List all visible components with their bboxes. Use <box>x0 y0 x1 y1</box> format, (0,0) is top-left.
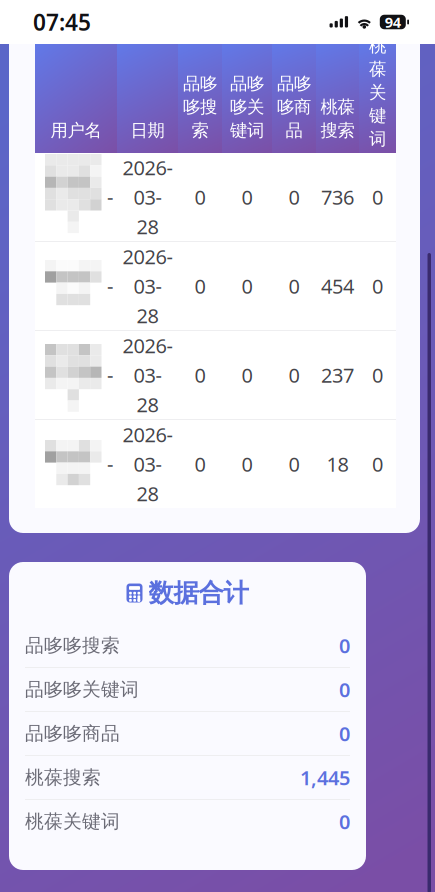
button[interactable]: 品哆哆商品 <box>9 712 366 756</box>
staticText: 03- <box>133 451 161 477</box>
staticText: 0 <box>241 362 252 388</box>
staticText: 0 <box>194 273 205 299</box>
staticText: 454 <box>321 273 354 299</box>
staticText: - <box>107 184 113 210</box>
staticText: 0 <box>241 184 252 210</box>
button[interactable]: 品哆哆搜索 <box>9 624 366 668</box>
staticText: 0 <box>241 451 252 477</box>
staticText: 07:45 <box>33 7 91 37</box>
staticText: 哆关 <box>230 96 264 118</box>
staticText: 736 <box>321 184 354 210</box>
button[interactable]: 品哆哆关键词 <box>9 668 366 712</box>
staticText: 品哆 <box>277 73 311 94</box>
staticText: 哆搜 <box>183 96 217 118</box>
staticText: 搜索 <box>320 120 354 141</box>
staticText: 0 <box>194 362 205 388</box>
staticText: 桃 <box>369 35 386 57</box>
staticText: 18 <box>326 451 348 477</box>
staticText: 日期 <box>130 120 164 141</box>
staticText: 索 <box>191 120 208 141</box>
staticText: 2026- <box>122 421 172 448</box>
staticText: 品哆 <box>183 73 217 94</box>
staticText: 94 <box>385 12 401 32</box>
staticText: - <box>107 273 113 299</box>
staticText: 0 <box>339 632 350 659</box>
staticText: 03- <box>133 184 161 210</box>
staticText: 0 <box>288 362 299 388</box>
staticText: 桃葆 <box>320 96 354 118</box>
staticText: 0 <box>194 184 205 210</box>
staticText: 桃葆关键词 <box>25 810 120 833</box>
staticText: 桃葆搜索 <box>25 766 101 789</box>
staticText: 0 <box>372 273 383 299</box>
staticText: 0 <box>194 451 205 477</box>
staticText: 0 <box>288 184 299 210</box>
button[interactable]: 桃葆搜索 <box>9 756 366 800</box>
staticText: 1,445 <box>300 764 350 791</box>
staticText: 0 <box>241 273 252 299</box>
staticText: 0 <box>339 808 350 835</box>
staticText: 品哆 <box>230 73 264 94</box>
staticText: 数据合计 <box>148 577 248 608</box>
staticText: 2026- <box>122 243 172 270</box>
staticText: - <box>107 451 113 477</box>
staticText: 28 <box>136 480 158 507</box>
staticText: 0 <box>339 676 350 703</box>
staticText: 28 <box>136 213 158 240</box>
staticText: 哆商 <box>277 96 311 118</box>
staticText: 葆 <box>369 59 386 80</box>
staticText: 品 <box>285 120 302 141</box>
staticText: 2026- <box>122 332 172 359</box>
staticText: 0 <box>288 273 299 299</box>
staticText: 03- <box>133 273 161 299</box>
staticText: 键词 <box>230 120 264 141</box>
staticText: 0 <box>372 451 383 477</box>
staticText: 关 <box>369 82 386 103</box>
button[interactable]: 数据合计 <box>9 562 366 624</box>
button[interactable]: 桃葆关键词 <box>9 800 366 844</box>
staticText: 28 <box>136 391 158 418</box>
staticText: 键 <box>369 105 386 126</box>
staticText: 2026- <box>122 154 172 181</box>
staticText: 28 <box>136 302 158 329</box>
staticText: 用户名 <box>50 120 101 141</box>
staticText: 品哆哆商品 <box>25 722 120 745</box>
staticText: - <box>107 362 113 388</box>
staticText: 237 <box>321 362 354 388</box>
staticText: 0 <box>339 720 350 747</box>
staticText: 品哆哆搜索 <box>25 634 120 657</box>
staticText: 0 <box>372 184 383 210</box>
staticText: 03- <box>133 362 161 388</box>
staticText: 品哆哆关键词 <box>25 678 139 701</box>
staticText: 词 <box>369 128 386 150</box>
staticText: 0 <box>372 362 383 388</box>
staticText: 0 <box>288 451 299 477</box>
